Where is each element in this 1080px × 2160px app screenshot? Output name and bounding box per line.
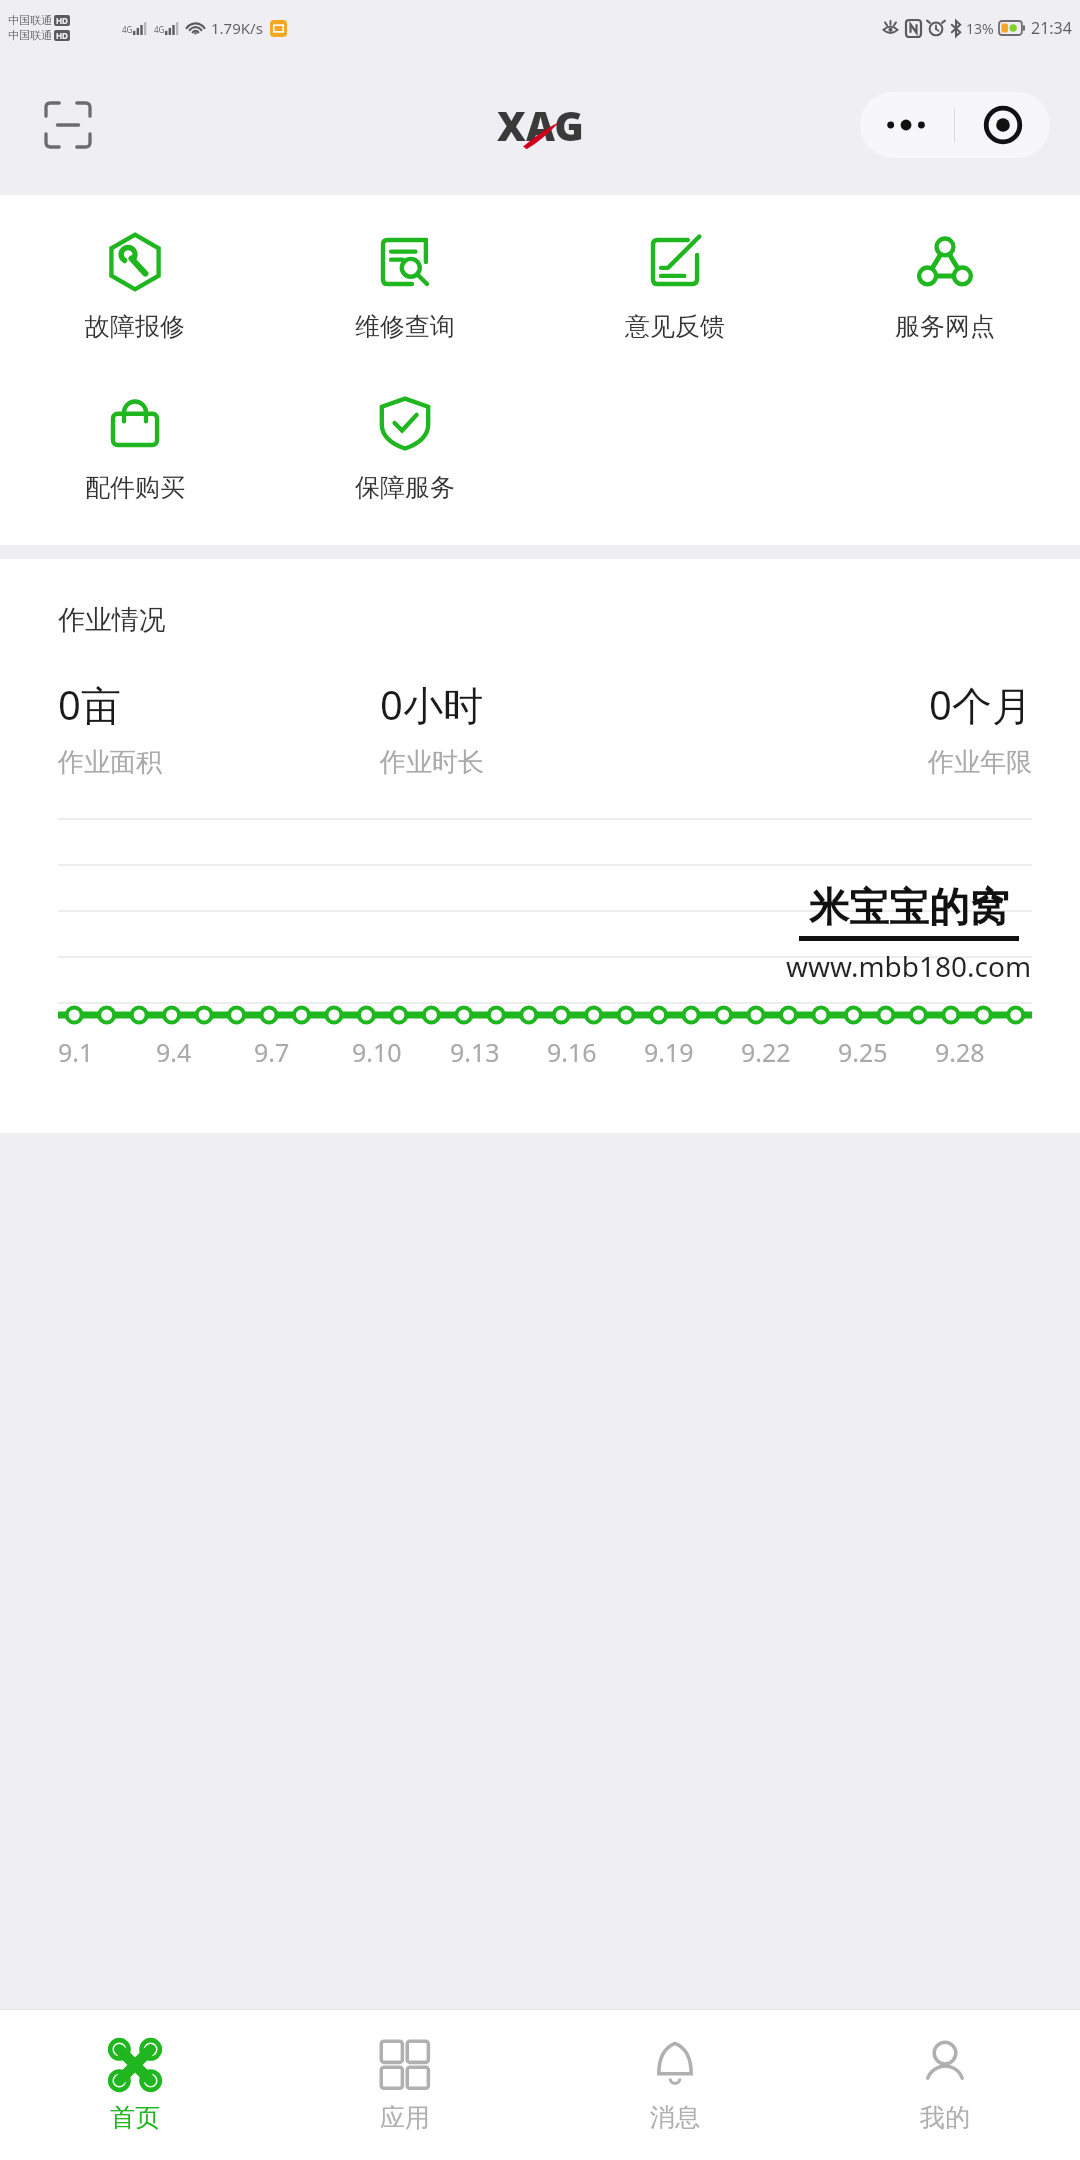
staticText: XAG — [497, 98, 584, 152]
staticText: 作业时长 — [380, 746, 484, 779]
staticText: 应用 — [380, 2102, 430, 2133]
staticText: 中国联通 — [8, 13, 52, 27]
staticText: 维修查询 — [355, 311, 455, 342]
staticText: 米宝宝的窝 — [809, 882, 1009, 932]
staticText: 9.4 — [156, 1035, 192, 1069]
staticText: 9.19 — [644, 1035, 694, 1069]
button[interactable]: 应用 — [270, 2010, 540, 2160]
staticText: HD — [56, 30, 68, 41]
staticText: 意见反馈 — [625, 311, 725, 342]
button[interactable]: 服务网点 — [810, 225, 1080, 350]
staticText: 中国联通 — [8, 28, 52, 42]
button[interactable]: 配件购买 — [0, 386, 270, 511]
button[interactable]: 保障服务 — [270, 386, 540, 511]
staticText: 1.79K/s — [211, 18, 263, 38]
button[interactable]: Menu — [860, 92, 1050, 158]
staticText: 0小时 — [380, 677, 483, 732]
staticText: 9.16 — [547, 1035, 597, 1069]
staticText: 9.13 — [450, 1035, 500, 1069]
staticText: 服务网点 — [895, 311, 995, 342]
staticText: 我的 — [920, 2102, 970, 2133]
staticText: 9.25 — [838, 1035, 888, 1069]
button[interactable]: Scan — [40, 97, 96, 153]
staticText: 0亩 — [58, 677, 121, 732]
staticText: 4G — [154, 24, 165, 35]
staticText: 作业年限 — [928, 746, 1032, 779]
staticText: 9.10 — [352, 1035, 402, 1069]
button[interactable]: 故障报修 — [0, 225, 270, 350]
button[interactable]: 我的 — [810, 2010, 1080, 2160]
staticText: 21:34 — [1031, 17, 1072, 39]
staticText: 9.7 — [254, 1035, 290, 1069]
staticText: www.mbb180.com — [786, 947, 1032, 985]
staticText: 4G — [122, 24, 133, 35]
button[interactable]: 意见反馈 — [540, 225, 810, 350]
staticText: 作业面积 — [58, 746, 162, 779]
staticText: 13% — [966, 19, 994, 38]
staticText: 9.22 — [741, 1035, 791, 1069]
button[interactable]: 首页 — [0, 2010, 270, 2160]
staticText: 保障服务 — [355, 472, 455, 503]
staticText: 消息 — [650, 2102, 700, 2133]
button[interactable]: 消息 — [540, 2010, 810, 2160]
staticText: 作业情况 — [58, 603, 166, 637]
staticText: 9.1 — [58, 1035, 94, 1069]
staticText: HD — [56, 15, 68, 26]
staticText: 9.28 — [935, 1035, 985, 1069]
button[interactable]: 维修查询 — [270, 225, 540, 350]
staticText: 首页 — [110, 2102, 160, 2133]
staticText: 故障报修 — [85, 311, 185, 342]
staticText: 0个月 — [929, 677, 1032, 732]
staticText: 配件购买 — [85, 472, 185, 503]
